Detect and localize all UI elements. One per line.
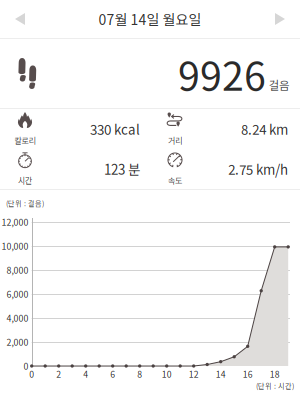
staticText: (단위 : 시간) — [256, 380, 294, 391]
staticText: 속도 — [168, 174, 182, 186]
staticText: 8 — [137, 368, 142, 380]
button[interactable]: Previous day — [0, 0, 40, 38]
staticText: 12,000 — [1, 216, 28, 228]
staticText: 10,000 — [1, 240, 28, 252]
staticText: 10 — [162, 368, 172, 380]
staticText: (단위 : 걸음) — [6, 198, 44, 208]
staticText: 12 — [189, 368, 199, 380]
staticText: 0 — [23, 360, 28, 372]
staticText: 16 — [243, 368, 253, 380]
staticText: 18 — [270, 368, 280, 380]
staticText: 4 — [83, 368, 88, 380]
staticText: 거리 — [168, 134, 182, 146]
staticText: 6,000 — [6, 288, 28, 300]
button[interactable]: Next day — [260, 0, 300, 38]
staticText: 4,000 — [6, 312, 28, 324]
staticText: 123 분 — [104, 159, 140, 179]
staticText: 시간 — [18, 174, 32, 186]
staticText: 8,000 — [6, 264, 28, 276]
staticText: 8.24 km — [241, 119, 288, 139]
staticText: 칼로리 — [14, 134, 35, 146]
staticText: 07월 14일 월요일 — [98, 9, 201, 29]
staticText: 2 — [56, 368, 61, 380]
staticText: 14 — [216, 368, 226, 380]
staticText: 0 — [29, 368, 34, 380]
staticText: 2.75 km/h — [228, 159, 288, 179]
staticText: 9926 — [178, 45, 266, 102]
staticText: 330 kcal — [90, 119, 140, 139]
staticText: 6 — [110, 368, 115, 380]
staticText: 2,000 — [6, 336, 28, 348]
staticText: 걸음 — [269, 77, 289, 93]
